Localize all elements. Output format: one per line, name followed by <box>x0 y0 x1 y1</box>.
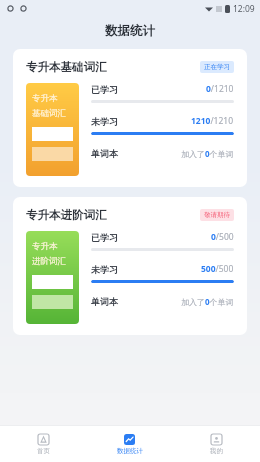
staticText: 首页 <box>37 447 50 455</box>
button[interactable]: 首页 <box>0 426 86 462</box>
button[interactable]: 专升本进阶词汇 <box>13 197 247 335</box>
staticText: 专升本进阶词汇 <box>26 208 107 222</box>
staticText: 已学习 <box>91 232 118 243</box>
staticText: 500/500 <box>201 263 234 275</box>
staticText: 未学习 <box>91 264 118 275</box>
button[interactable]: 我的 <box>173 426 260 462</box>
staticText: 数据统计 <box>117 447 143 455</box>
staticText: 加入了0个单词 <box>181 296 234 307</box>
staticText: 敬请期待 <box>204 211 230 219</box>
staticText: 已学习 <box>91 84 118 95</box>
staticText: 单词本 <box>91 296 118 307</box>
staticText: 单词本 <box>91 148 118 159</box>
staticText: 我的 <box>210 447 223 455</box>
staticText: 12:09 <box>233 3 255 15</box>
staticText: 专升本基础词汇 <box>26 60 107 74</box>
staticText: 0/500 <box>211 231 234 243</box>
staticText: 加入了0个单词 <box>181 148 234 159</box>
staticText: 数据统计 <box>105 23 155 39</box>
staticText: 正在学习 <box>204 63 230 71</box>
staticText: 进阶词汇 <box>32 256 66 267</box>
staticText: 0/1210 <box>206 83 234 95</box>
staticText: 未学习 <box>91 116 118 127</box>
staticText: 基础词汇 <box>32 108 66 119</box>
button[interactable]: 专升本基础词汇 <box>13 49 247 187</box>
button[interactable]: 数据统计 <box>86 426 173 462</box>
staticText: 1210/1210 <box>191 115 234 127</box>
staticText: 专升本 <box>32 93 58 104</box>
staticText: 专升本 <box>32 241 58 252</box>
